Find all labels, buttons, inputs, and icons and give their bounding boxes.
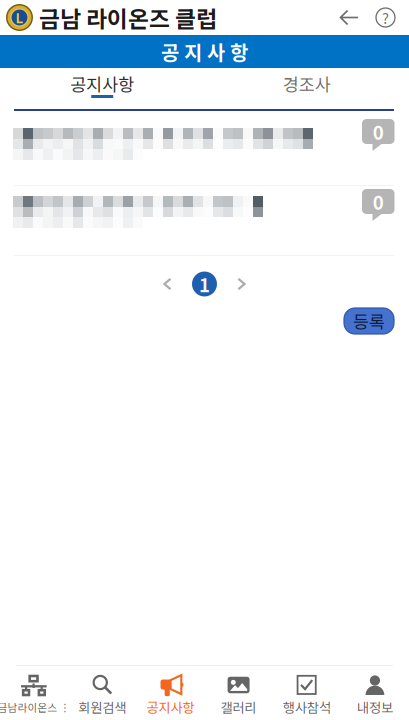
staticText: ? — [382, 7, 389, 28]
button[interactable]: 회원검색 — [68, 665, 136, 720]
staticText: 0 — [373, 118, 384, 145]
staticText: 행사참석 — [283, 697, 331, 717]
button[interactable]: 내정보 — [341, 665, 409, 720]
staticText: 등록 — [353, 308, 385, 334]
staticText: 1 — [199, 270, 210, 297]
button[interactable]: 행사참석 — [273, 665, 341, 720]
button[interactable]: 금남라이온스 ⋮ — [0, 665, 68, 720]
button[interactable]: 등록 — [344, 308, 394, 334]
button[interactable] — [0, 186, 409, 255]
staticText: 공지사항 — [70, 71, 134, 97]
staticText: 회원검색 — [78, 697, 126, 717]
staticText: 금남 라이온즈 클럽 — [39, 1, 217, 34]
button[interactable]: Back — [339, 8, 360, 26]
staticText: 0 — [373, 188, 384, 215]
button[interactable] — [0, 111, 409, 185]
staticText: 갤러리 — [221, 697, 257, 717]
button[interactable]: 공지사항 — [0, 68, 204, 109]
button[interactable]: Next page — [223, 271, 259, 297]
button[interactable]: 1 — [186, 271, 222, 297]
staticText: 금남라이온스 ⋮ — [0, 699, 71, 715]
staticText: 내정보 — [357, 697, 393, 717]
staticText: L — [15, 8, 23, 27]
button[interactable]: 공지사항 — [136, 665, 204, 720]
button[interactable]: Previous page — [149, 271, 185, 297]
button[interactable]: 갤러리 — [204, 665, 273, 720]
staticText: 공지사항 — [146, 697, 194, 717]
staticText: 경조사 — [283, 71, 331, 97]
button[interactable]: 경조사 — [204, 68, 409, 109]
staticText: 공 지 사 항 — [161, 37, 248, 66]
button[interactable]: Help — [360, 7, 396, 28]
